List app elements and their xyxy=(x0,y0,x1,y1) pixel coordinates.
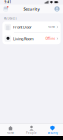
button[interactable]: Notifications xyxy=(1,4,10,13)
staticText: Living Room xyxy=(13,36,34,41)
staticText: Home xyxy=(6,131,14,135)
staticText: Front Door xyxy=(13,24,32,30)
button[interactable]: Home xyxy=(0,124,21,136)
button[interactable]: Living Room xyxy=(2,33,61,44)
staticText: Offline xyxy=(46,37,56,40)
staticText: Security xyxy=(23,6,39,11)
staticText: 9:41 xyxy=(4,0,11,4)
staticText: Security xyxy=(47,131,57,135)
button[interactable]: Security xyxy=(42,124,63,136)
staticText: Home xyxy=(48,25,56,29)
button[interactable]: Account xyxy=(52,4,62,13)
button[interactable]: People xyxy=(21,124,42,136)
button[interactable]: Front Door xyxy=(2,21,61,33)
staticText: People xyxy=(26,131,37,135)
staticText: My Devices xyxy=(4,17,17,20)
